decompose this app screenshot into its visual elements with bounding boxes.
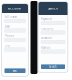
button[interactable]: Save: [4, 68, 25, 73]
staticText: Radius: [41, 46, 50, 49]
staticText: Phone: [4, 34, 14, 38]
staticText: SEARCH: [48, 7, 58, 10]
staticText: Full name: [4, 15, 17, 19]
staticText: Save: [12, 69, 17, 72]
staticText: Category: [41, 27, 53, 30]
staticText: City: [4, 44, 9, 47]
staticText: ACCOUNT: [8, 7, 22, 10]
button[interactable]: Search: [41, 64, 65, 69]
staticText: Search: [49, 65, 57, 68]
staticText: Location: [41, 36, 52, 40]
staticText: Keyword: [41, 17, 52, 21]
staticText: Email: [4, 25, 10, 28]
